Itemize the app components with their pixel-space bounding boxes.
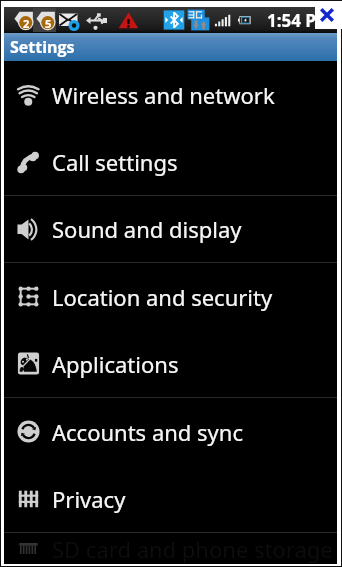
button[interactable]: Location and security [4,263,337,330]
button[interactable]: Sound and display [4,196,337,262]
button[interactable]: Applications [4,330,337,397]
staticText: Accounts and sync [52,417,243,447]
staticText: Privacy [52,484,126,514]
staticText: 1:54 PM [267,9,333,32]
staticText: SD card and phone storage [52,534,333,564]
button[interactable]: Privacy [4,465,337,532]
staticText: Wireless and network [52,80,275,110]
button[interactable]: Close [315,1,342,29]
staticText: Settings [10,36,75,58]
button[interactable]: Wireless and network [4,61,337,129]
staticText: Location and security [52,282,273,312]
staticText: 5 [45,16,52,29]
button[interactable]: Accounts and sync [4,398,337,465]
button[interactable]: Call settings [4,129,337,195]
staticText: Applications [52,349,179,379]
staticText: Call settings [52,147,178,177]
staticText: Sound and display [52,214,242,244]
staticText: 2 [23,16,30,29]
button[interactable]: SD card and phone storage [4,533,337,564]
